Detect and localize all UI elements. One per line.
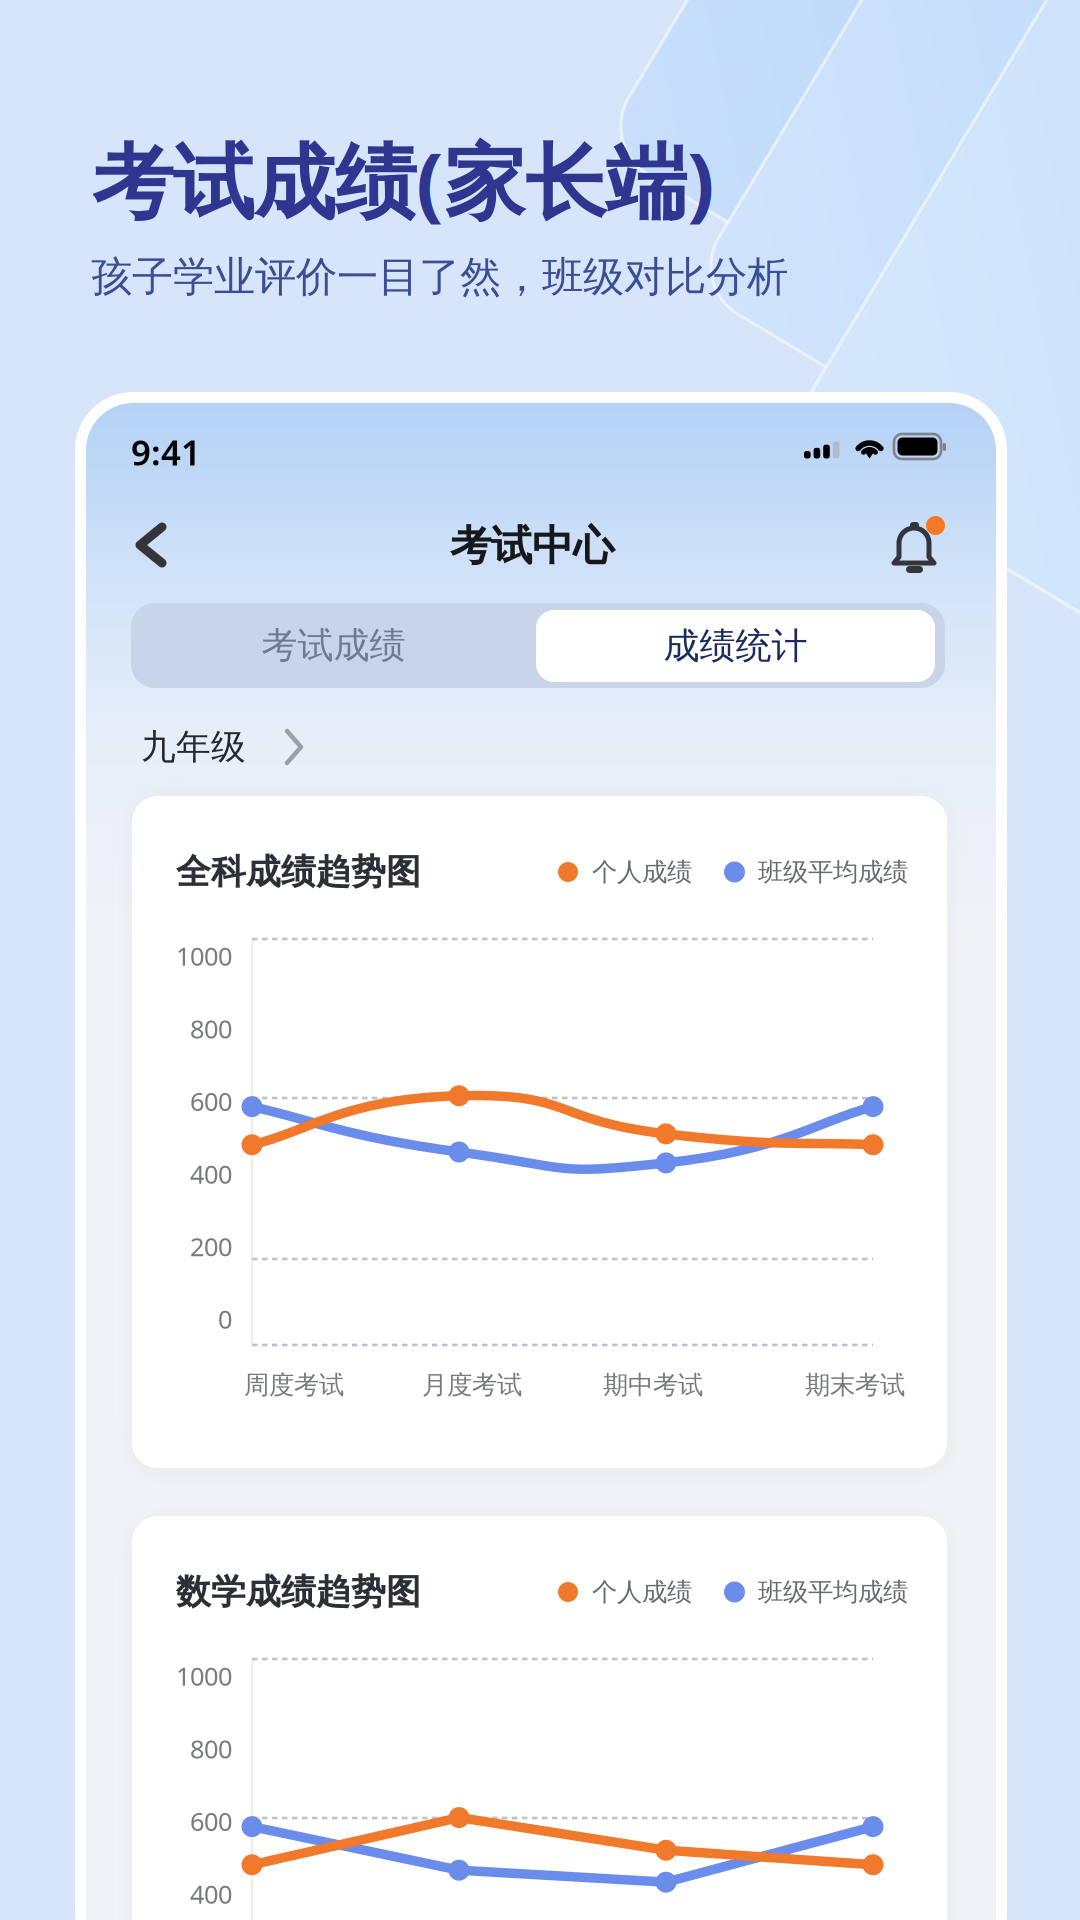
staticText: 个人成绩 [592, 1576, 692, 1607]
button[interactable]: 九年级 [86, 403, 996, 1920]
staticText: 9:41 [131, 429, 201, 475]
button[interactable]: 成绩统计 [131, 603, 945, 688]
staticText: 400 [190, 1877, 232, 1911]
staticText: 周度考试 [244, 1369, 344, 1400]
staticText: 1000 [176, 1659, 232, 1693]
staticText: 期末考试 [805, 1369, 905, 1400]
staticText: 数学成绩趋势图 [176, 1571, 421, 1613]
staticText: 600 [190, 1084, 232, 1118]
staticText: 考试中心 [450, 521, 614, 571]
button[interactable]: 通知 [86, 403, 996, 1920]
staticText: 全科成绩趋势图 [176, 851, 421, 893]
button[interactable]: 返回 [86, 403, 996, 1920]
staticText: 个人成绩 [592, 856, 692, 887]
staticText: 班级平均成绩 [758, 856, 908, 887]
button[interactable]: 考试成绩 [131, 603, 945, 688]
staticText: 800 [190, 1012, 232, 1045]
staticText: 400 [190, 1157, 232, 1191]
staticText: 800 [190, 1732, 232, 1765]
staticText: 200 [190, 1230, 232, 1263]
staticText: 期中考试 [603, 1369, 703, 1400]
staticText: 600 [190, 1804, 232, 1838]
staticText: 成绩统计 [663, 624, 807, 668]
staticText: 孩子学业评价一目了然，班级对比分析 [91, 252, 788, 302]
staticText: 班级平均成绩 [758, 1576, 908, 1607]
staticText: 月度考试 [422, 1369, 522, 1400]
staticText: 考试成绩(家长端) [92, 126, 715, 234]
staticText: 0 [218, 1302, 232, 1336]
staticText: 考试成绩 [261, 623, 405, 668]
staticText: 1000 [176, 939, 232, 973]
staticText: 九年级 [141, 726, 246, 768]
